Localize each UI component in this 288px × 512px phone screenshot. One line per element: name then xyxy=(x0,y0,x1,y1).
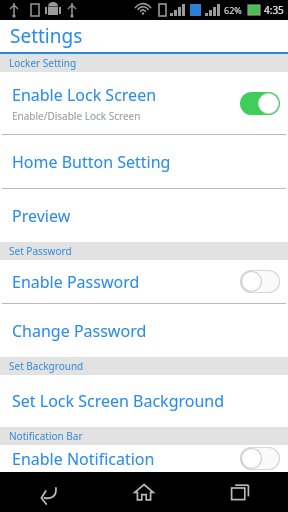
button[interactable]: Back xyxy=(0,472,96,512)
staticText: Set Password xyxy=(9,244,72,258)
button[interactable]: Home xyxy=(96,472,192,512)
staticText: Home Button Setting xyxy=(12,151,171,173)
staticText: Enable/Disable Lock Screen xyxy=(12,109,141,123)
staticText: Set Background xyxy=(9,359,84,373)
staticText: Set Lock Screen Background xyxy=(12,390,225,412)
staticText: Enable Notification xyxy=(12,448,155,470)
button[interactable]: Enable Notification xyxy=(0,445,288,472)
staticText: Enable Lock Screen xyxy=(12,84,157,106)
staticText: 4:35 xyxy=(264,3,284,17)
staticText: Locker Setting xyxy=(9,56,77,70)
button[interactable]: Preview xyxy=(0,189,288,242)
staticText: Change Password xyxy=(12,320,147,342)
button[interactable]: Toggle off xyxy=(240,270,280,293)
staticText: Preview xyxy=(12,205,71,227)
button[interactable]: Home Button Setting xyxy=(0,135,288,188)
staticText: Settings xyxy=(10,23,83,49)
button[interactable]: Enable Lock Screen xyxy=(0,72,288,134)
button[interactable]: Enable Password xyxy=(0,260,288,303)
button[interactable]: Set Lock Screen Background xyxy=(0,375,288,427)
button[interactable]: Toggle on xyxy=(240,92,280,115)
staticText: 62% xyxy=(224,4,242,16)
button[interactable]: Change Password xyxy=(0,304,288,357)
button[interactable]: Recent apps xyxy=(192,472,288,512)
button[interactable]: Toggle off xyxy=(240,447,280,470)
staticText: Notification Bar xyxy=(9,429,83,443)
staticText: Enable Password xyxy=(12,271,140,293)
